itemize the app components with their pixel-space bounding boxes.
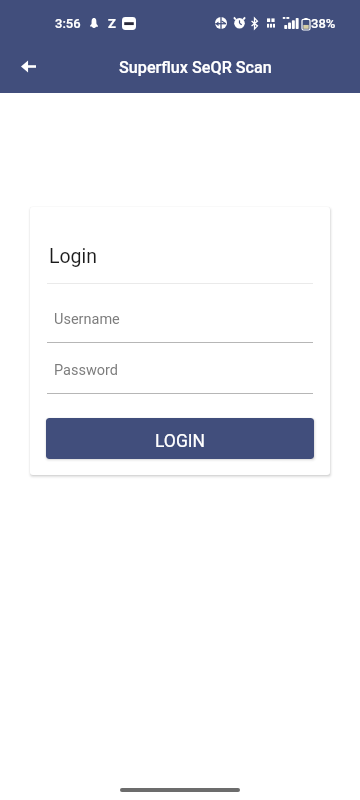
button[interactable]: LOGIN [46, 418, 314, 459]
staticText: 3:56 [55, 16, 81, 31]
staticText: 38% [311, 16, 336, 31]
staticText: Z [108, 16, 116, 31]
staticText: Password [54, 362, 119, 379]
button[interactable]: Username [47, 306, 313, 343]
button[interactable]: Back [10, 49, 46, 85]
staticText: Username [54, 311, 120, 328]
button[interactable]: Password [47, 357, 313, 394]
staticText: Superflux SeQR Scan [119, 58, 272, 77]
staticText: LOGIN [155, 431, 206, 452]
staticText: Login [49, 245, 98, 268]
